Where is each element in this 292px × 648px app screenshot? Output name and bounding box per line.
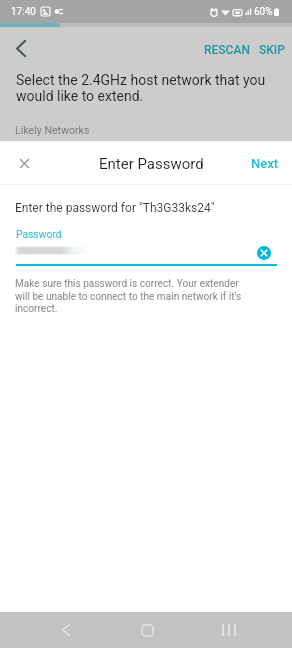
staticText: Enter the password for "Th3G33ks24" — [15, 201, 215, 215]
button[interactable]: Back — [48, 612, 84, 648]
staticText: Enter Password — [99, 155, 204, 173]
staticText: RESCAN — [204, 43, 250, 57]
button[interactable]: SKIP — [255, 36, 289, 64]
staticText: Password — [16, 228, 62, 240]
button[interactable]: Back — [6, 33, 36, 63]
button[interactable]: Close — [9, 148, 39, 178]
staticText: 17:40 — [11, 6, 36, 18]
button[interactable]: RESCAN — [200, 36, 254, 64]
button[interactable]: Home — [129, 612, 165, 648]
staticText: Select the 2.4GHz host network that you … — [16, 72, 268, 104]
button[interactable]: Next — [238, 147, 292, 180]
staticText: Likely Networks — [15, 124, 90, 136]
button[interactable]: Clear password — [253, 242, 275, 264]
staticText: Next — [251, 156, 279, 171]
staticText: 60% — [254, 6, 273, 18]
button[interactable]: Recent apps — [211, 612, 247, 648]
staticText: SKIP — [259, 43, 285, 57]
staticText: Make sure this password is correct. Your… — [15, 278, 255, 314]
